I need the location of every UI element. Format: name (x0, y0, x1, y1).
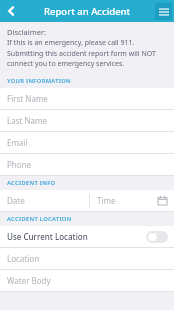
staticText: Report an Accident (44, 5, 131, 18)
staticText: Date (7, 195, 25, 206)
staticText: Email (7, 137, 28, 148)
button[interactable]: Date (0, 190, 89, 211)
staticText: First Name (7, 93, 48, 104)
staticText: Last Name (7, 115, 48, 126)
button[interactable]: Email (0, 132, 174, 153)
button[interactable]: Time (90, 190, 174, 211)
button[interactable]: Back (0, 0, 22, 22)
staticText: ACCIDENT LOCATION (7, 215, 72, 223)
button[interactable]: First Name (0, 88, 174, 109)
staticText: Time (97, 195, 116, 206)
button[interactable]: Phone (0, 154, 174, 175)
other: Pick date (157, 195, 168, 206)
staticText: Water Body (7, 275, 51, 286)
staticText: ACCIDENT INFO (7, 179, 56, 187)
button[interactable]: Location (0, 248, 174, 269)
button[interactable]: Last Name (0, 110, 174, 131)
staticText: Disclaimer: (7, 27, 47, 37)
staticText: Phone (7, 159, 32, 170)
button[interactable]: Use Current Location (0, 226, 174, 247)
staticText: YOUR INFORMATION (7, 77, 71, 85)
button[interactable]: Menu (155, 3, 172, 20)
staticText: Location (7, 253, 40, 264)
button[interactable]: Water Body (0, 270, 174, 291)
staticText: If this is an emergency, please call 911… (7, 38, 168, 68)
staticText: Use Current Location (7, 231, 146, 242)
